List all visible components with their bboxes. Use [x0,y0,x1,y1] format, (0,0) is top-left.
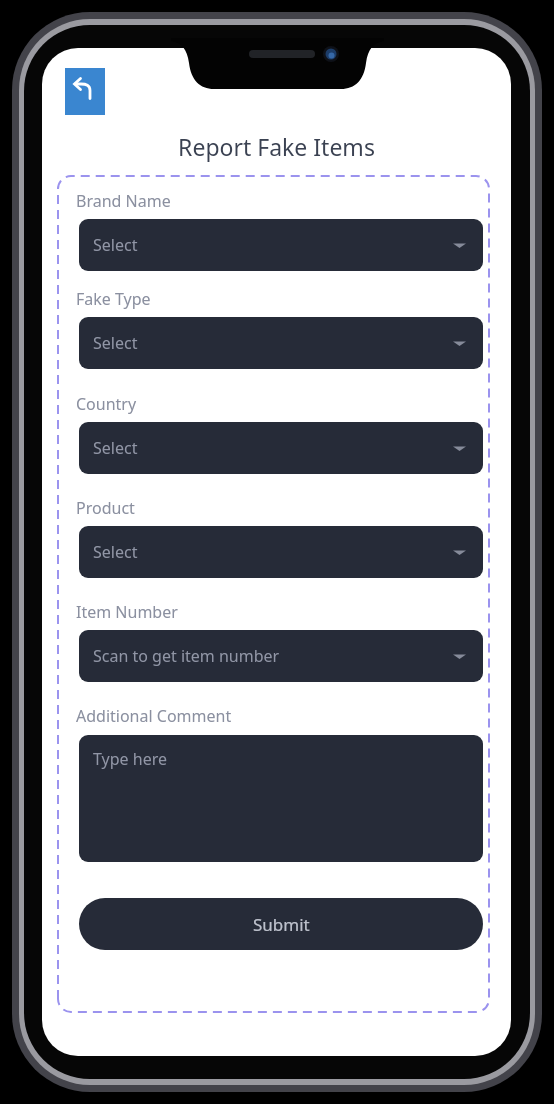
staticText: Fake Type [76,288,151,310]
staticText: Select [93,234,453,256]
staticText: Select [93,437,453,459]
staticText: Additional Comment [76,705,232,727]
button[interactable]: Type here [79,735,483,862]
staticText: Scan to get item number [93,645,453,667]
button[interactable]: Submit [79,898,483,950]
button[interactable]: Select [79,219,483,271]
staticText: Report Fake Items [42,131,511,162]
staticText: Country [76,393,137,415]
staticText: Select [93,332,453,354]
staticText: Product [76,497,135,519]
staticText: Item Number [76,601,178,623]
staticText: Submit [253,913,310,936]
staticText: Type here [93,748,167,770]
button[interactable]: Select [79,317,483,369]
button[interactable]: Back [65,68,105,115]
staticText: Select [93,541,453,563]
button[interactable]: Select [79,526,483,578]
button[interactable]: Scan to get item number [79,630,483,682]
staticText: Brand Name [76,190,171,212]
button[interactable]: Select [79,422,483,474]
